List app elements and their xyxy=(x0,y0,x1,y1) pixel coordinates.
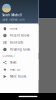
staticText: CONNECT xyxy=(2,54,15,58)
button[interactable]: More Books xyxy=(0,73,38,80)
button[interactable]: Rate us xyxy=(0,66,38,73)
staticText: Sarah Mitchell xyxy=(2,13,22,17)
staticText: Rate us xyxy=(10,68,20,71)
staticText: Home xyxy=(10,27,18,30)
staticText: More Books xyxy=(10,75,26,78)
button[interactable]: Home xyxy=(0,25,38,32)
staticText: Share xyxy=(10,61,17,64)
button[interactable]: Share xyxy=(0,59,38,66)
staticText: Recent Books xyxy=(10,34,29,37)
button[interactable]: Recent Books xyxy=(0,32,38,39)
staticText: sarah.m@mail.com xyxy=(2,18,24,21)
staticText: Book Lists xyxy=(10,41,23,44)
staticText: Reading Goals xyxy=(10,48,30,51)
button[interactable]: Book Lists xyxy=(0,39,38,46)
button[interactable]: Reading Goals xyxy=(0,46,38,53)
